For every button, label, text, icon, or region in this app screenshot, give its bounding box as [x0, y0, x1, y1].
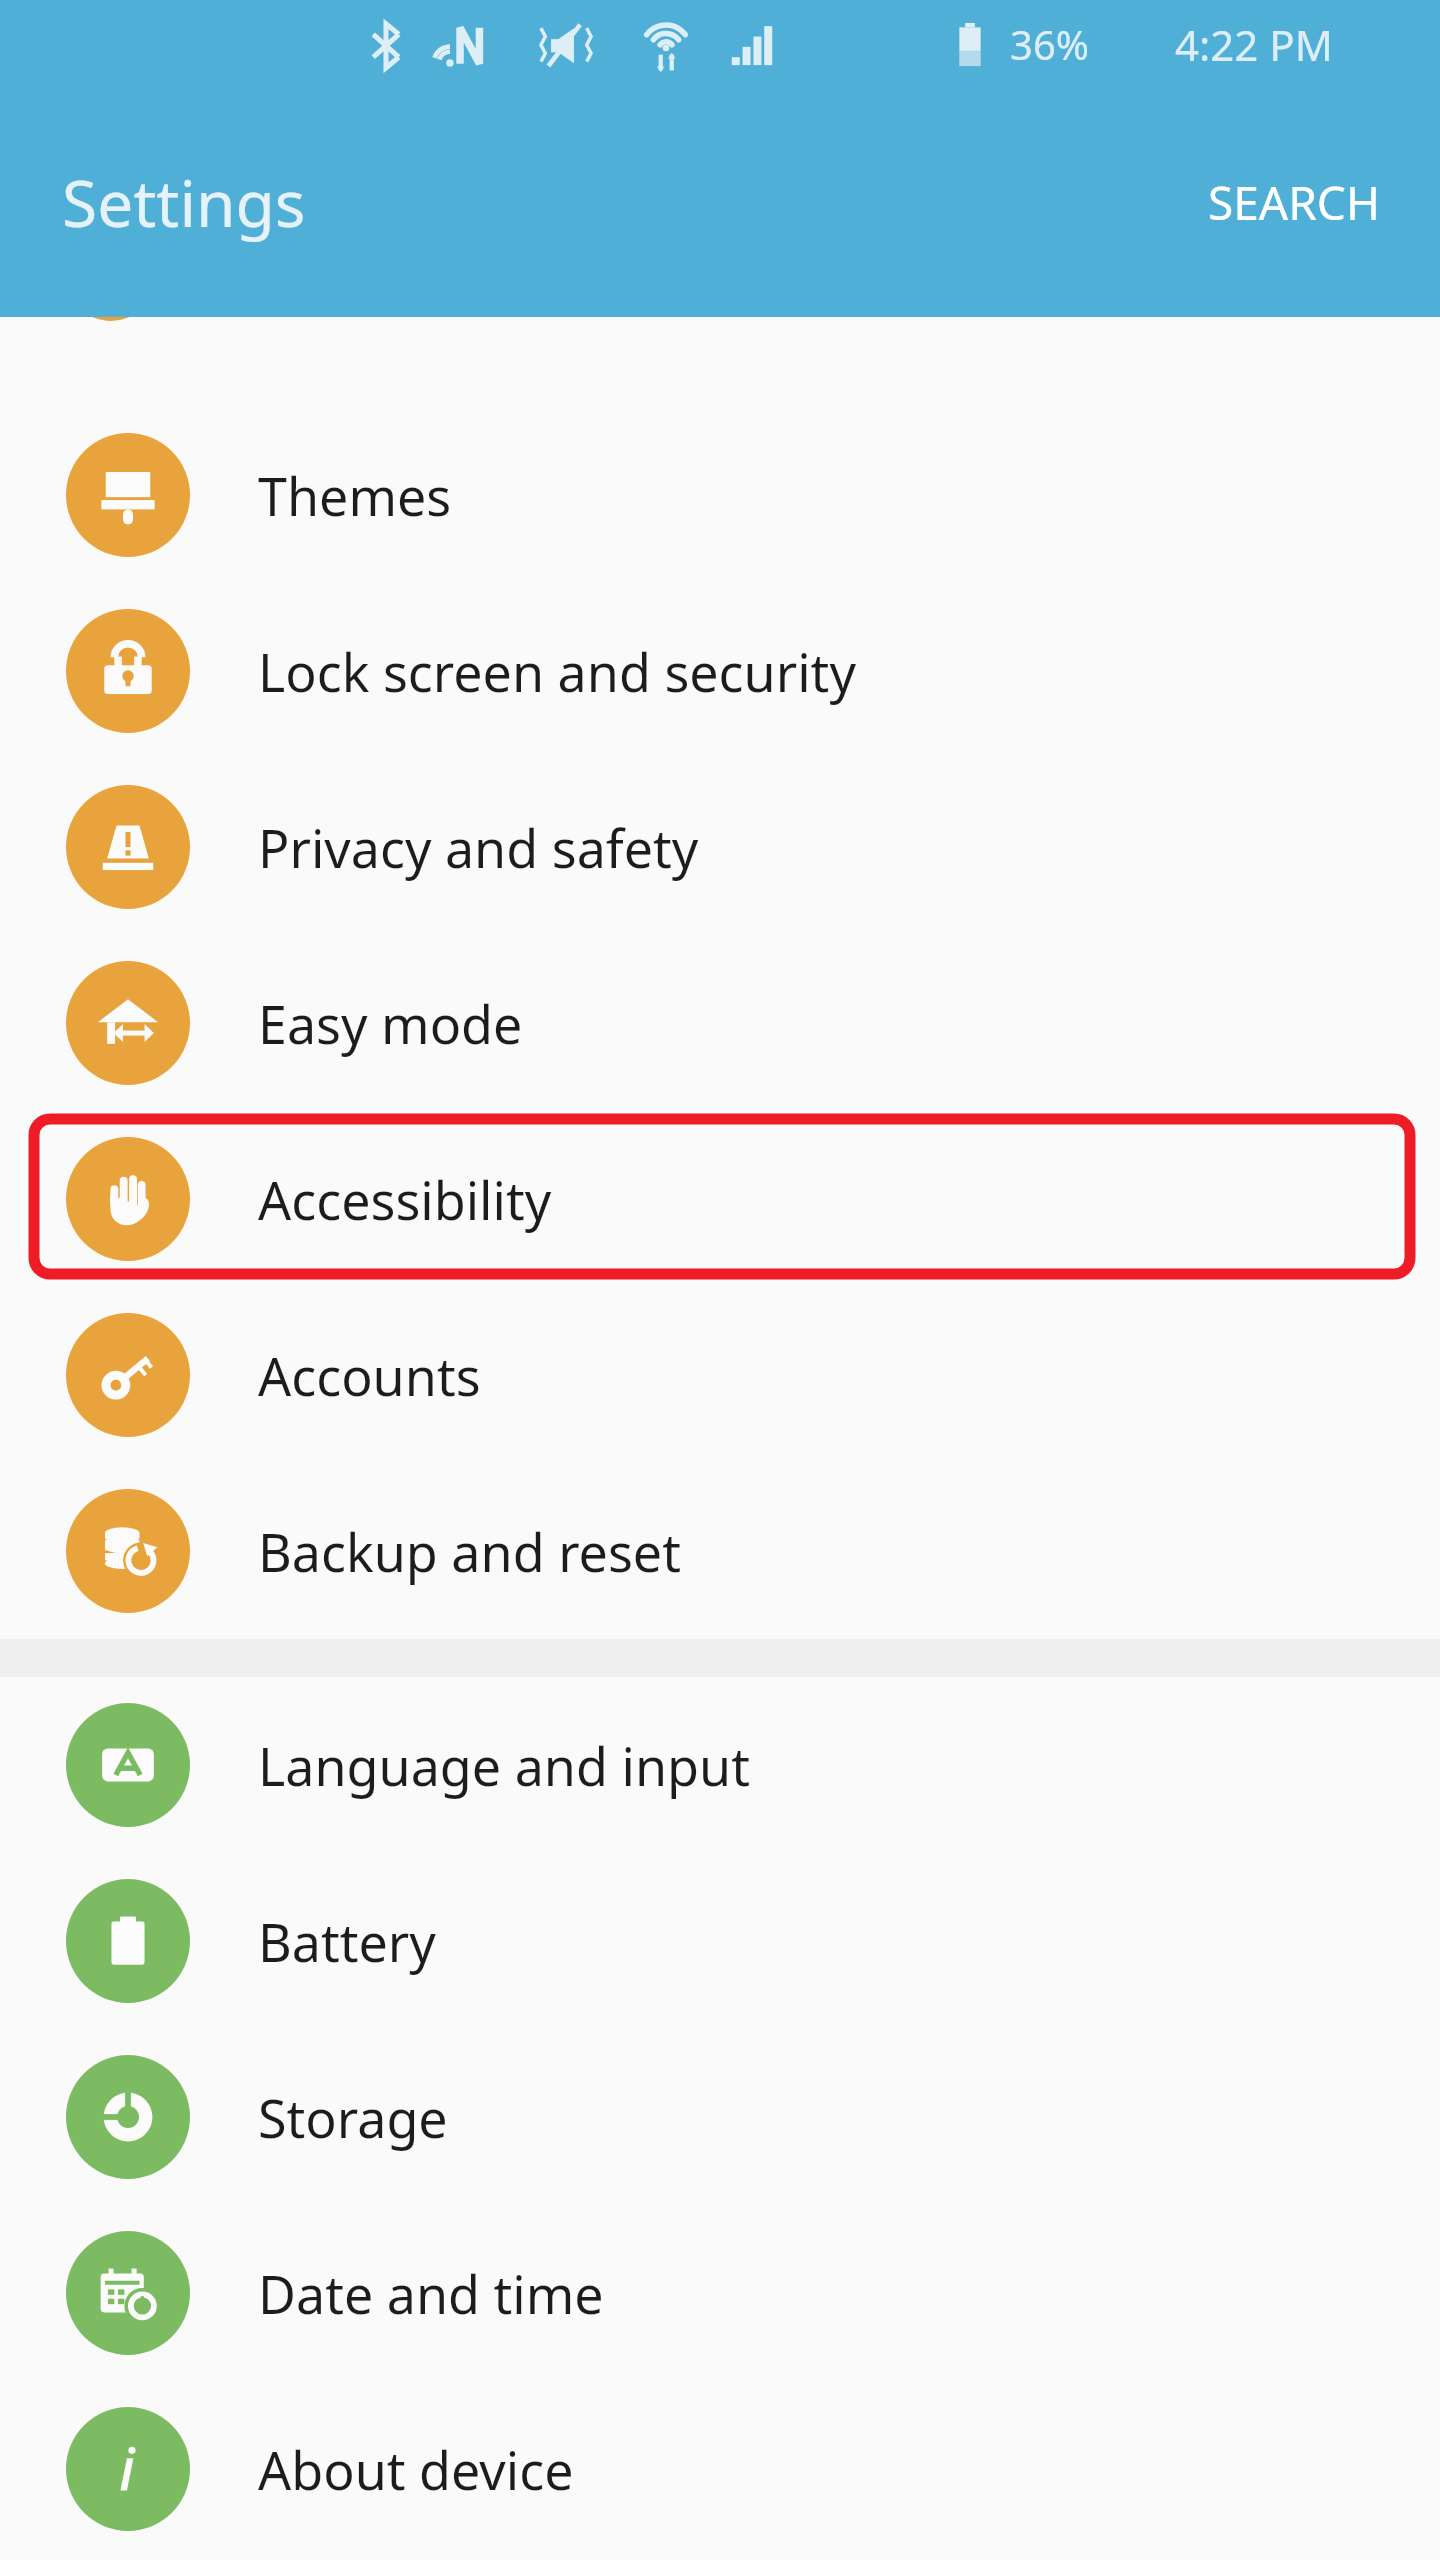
button[interactable]: Storage	[0, 2029, 1440, 2205]
staticText: Easy mode	[258, 988, 523, 1059]
button[interactable]: Language and input	[0, 1677, 1440, 1853]
staticText: Backup and reset	[258, 1516, 681, 1587]
staticText: Lock screen and security	[258, 636, 856, 707]
staticText: Storage	[258, 2082, 448, 2153]
staticText: Accessibility	[258, 1164, 552, 1235]
other: Accessibility highlight	[0, 0, 1440, 2560]
button[interactable]: About device	[0, 2381, 1440, 2557]
button[interactable]: Lock screen and security	[0, 583, 1440, 759]
button[interactable]: Date and time	[0, 2205, 1440, 2381]
button[interactable]: Privacy and safety	[0, 759, 1440, 935]
staticText: Privacy and safety	[258, 812, 699, 883]
staticText: Battery	[258, 1906, 436, 1977]
button[interactable]: SEARCH	[1180, 145, 1408, 260]
button[interactable]: Battery	[0, 1853, 1440, 2029]
button[interactable]: Easy mode	[0, 935, 1440, 1111]
staticText: Themes	[258, 460, 452, 531]
button[interactable]: Wallpaper	[0, 317, 1440, 321]
staticText: Accounts	[258, 1340, 481, 1411]
button[interactable]: Accounts	[0, 1287, 1440, 1463]
staticText: Settings	[62, 159, 306, 246]
staticText: SEARCH	[1208, 171, 1380, 234]
staticText: 36%	[1010, 17, 1089, 71]
button[interactable]: Accessibility	[0, 1111, 1440, 1287]
staticText: About device	[258, 2434, 574, 2505]
button[interactable]: Backup and reset	[0, 1463, 1440, 1639]
staticText: 4:22 PM	[1175, 16, 1333, 73]
staticText: Date and time	[258, 2258, 604, 2329]
staticText: Language and input	[258, 1730, 750, 1801]
button[interactable]: Themes	[0, 407, 1440, 583]
